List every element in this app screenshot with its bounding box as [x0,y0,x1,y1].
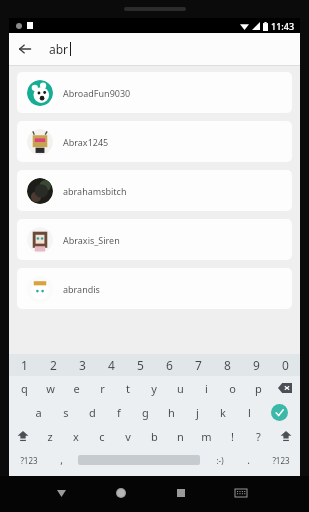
button[interactable]: 5 [126,354,155,376]
button[interactable]: Recent apps [170,482,192,504]
staticText: s [63,405,69,420]
button[interactable]: ? [245,424,271,448]
staticText: v [125,429,131,444]
staticText: y [151,381,157,396]
staticText: . [247,453,250,467]
staticText: b [151,429,158,444]
button[interactable]: Back [50,482,72,504]
staticText: c [99,429,105,444]
button[interactable]: c [89,424,115,448]
staticText: z [47,429,53,444]
button[interactable]: , [48,448,74,472]
button[interactable]: o [219,376,245,400]
button[interactable]: 3 [68,354,97,376]
button[interactable]: abrandis [17,268,292,309]
button[interactable]: Abraxis_Siren [17,219,292,260]
button[interactable]: Enter [262,400,296,424]
button[interactable]: f [106,400,132,424]
button[interactable]: j [184,400,210,424]
button[interactable]: v [115,424,141,448]
button[interactable]: ?123 [261,448,300,472]
staticText: w [46,381,55,396]
button[interactable]: u [167,376,193,400]
staticText: abrahamsbitch [63,185,127,197]
button[interactable]: q [11,376,37,400]
button[interactable]: Back [9,33,41,65]
staticText: k [220,405,226,420]
button[interactable]: i [193,376,219,400]
button[interactable]: 6 [155,354,184,376]
button[interactable]: y [141,376,167,400]
button[interactable]: 1 [9,354,39,376]
staticText: a [35,405,42,420]
button[interactable]: ?123 [9,448,48,472]
staticText: abrandis [63,283,100,295]
button[interactable]: Backspace [271,376,298,400]
button[interactable]: r [89,376,115,400]
button[interactable]: a [25,400,52,424]
staticText: :-) [216,455,224,466]
staticText: ! [231,429,234,444]
button[interactable]: 2 [39,354,68,376]
staticText: ? [256,429,261,444]
button[interactable]: Switch keyboard [230,482,252,504]
staticText: e [73,381,80,396]
button[interactable]: g [132,400,158,424]
staticText: ?123 [20,455,38,466]
button[interactable]: 4 [97,354,126,376]
button[interactable]: abrahamsbitch [17,170,292,211]
staticText: h [168,405,175,420]
staticText: f [117,405,121,420]
staticText: 8 [224,357,231,373]
button[interactable]: m [193,424,219,448]
staticText: p [255,381,262,396]
button[interactable]: 8 [213,354,242,376]
staticText: 11:43 [271,20,295,32]
staticText: t [126,381,130,396]
button[interactable]: p [245,376,271,400]
staticText: r [100,381,105,396]
button[interactable]: w [37,376,63,400]
staticText: 7 [195,357,202,373]
staticText: abr [49,41,69,57]
button[interactable]: 7 [184,354,213,376]
staticText: l [248,405,251,420]
button[interactable]: . [235,448,261,472]
staticText: i [205,381,208,396]
staticText: j [196,405,199,420]
button[interactable]: AbroadFun9030 [17,72,292,113]
staticText: n [177,429,184,444]
button[interactable]: Shift [9,424,37,448]
button[interactable]: Shift [271,424,300,448]
staticText: 4 [108,357,115,373]
button[interactable]: Abrax1245 [17,121,292,162]
staticText: q [21,381,28,396]
button[interactable]: b [141,424,167,448]
button[interactable]: Home [110,482,132,504]
button[interactable]: 0 [271,354,300,376]
staticText: ?123 [272,455,290,466]
button[interactable]: ! [219,424,245,448]
button[interactable]: d [79,400,106,424]
staticText: 5 [137,357,144,373]
staticText: , [60,453,63,467]
button[interactable]: x [63,424,89,448]
button[interactable]: l [236,400,262,424]
button[interactable]: n [167,424,193,448]
button[interactable]: t [115,376,141,400]
button[interactable]: e [63,376,89,400]
button[interactable]: z [37,424,63,448]
staticText: 9 [253,357,260,373]
button[interactable]: :-) [204,448,235,472]
button[interactable]: 9 [242,354,271,376]
staticText: AbroadFun9030 [63,87,131,99]
button[interactable]: s [52,400,79,424]
staticText: u [177,381,184,396]
button[interactable]: h [158,400,184,424]
staticText: 6 [166,357,173,373]
staticText: 0 [282,357,289,373]
button[interactable]: k [210,400,236,424]
staticText: 2 [50,357,57,373]
staticText: 3 [79,357,86,373]
